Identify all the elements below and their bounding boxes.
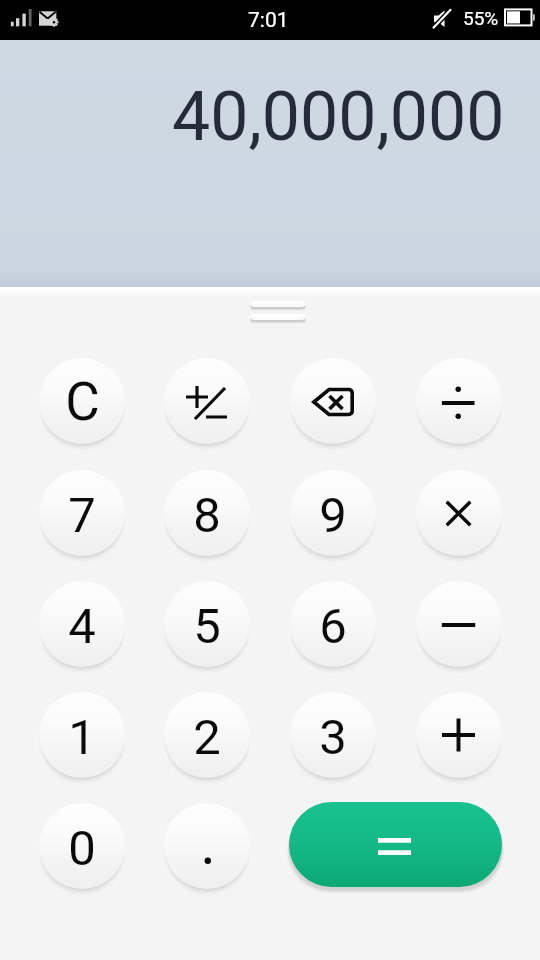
staticText: 1 — [68, 709, 96, 766]
button[interactable]: Decimal point — [164, 803, 250, 889]
staticText: 8 — [193, 487, 221, 544]
button[interactable]: Equals — [289, 802, 502, 887]
staticText: 6 — [319, 598, 347, 655]
staticText: 55% — [463, 7, 499, 29]
button[interactable]: 8 — [164, 470, 250, 556]
button[interactable]: 5 — [164, 581, 250, 667]
button[interactable]: 2 — [164, 692, 250, 778]
staticText: 5 — [193, 598, 221, 655]
button[interactable]: Backspace — [290, 358, 376, 444]
button[interactable]: Drag handle — [251, 301, 305, 307]
button[interactable]: Multiply — [416, 470, 502, 556]
staticText: 2 — [193, 709, 221, 766]
button[interactable]: 0 — [39, 803, 125, 889]
button[interactable]: Clear — [39, 358, 125, 444]
button[interactable]: 6 — [290, 581, 376, 667]
button[interactable]: 7 — [39, 470, 125, 556]
staticText: 4 — [68, 598, 96, 655]
button[interactable]: 4 — [39, 581, 125, 667]
button[interactable]: 3 — [290, 692, 376, 778]
staticText: 40,000,000 — [172, 77, 505, 157]
button[interactable]: Drag handle — [251, 314, 305, 320]
staticText: 0 — [68, 820, 96, 877]
staticText: C — [65, 371, 100, 433]
button[interactable]: 1 — [39, 692, 125, 778]
staticText: 7:01 — [248, 8, 289, 33]
staticText: 9 — [319, 487, 347, 544]
button[interactable]: Plus minus — [164, 358, 250, 444]
other: Sound off, battery 55 percent — [430, 0, 540, 40]
button[interactable]: Minus — [416, 581, 502, 667]
staticText: 7 — [68, 487, 96, 544]
button[interactable]: Plus — [416, 692, 502, 778]
button[interactable]: Divide — [416, 358, 502, 444]
button[interactable]: 9 — [290, 470, 376, 556]
staticText: 3 — [319, 709, 347, 766]
